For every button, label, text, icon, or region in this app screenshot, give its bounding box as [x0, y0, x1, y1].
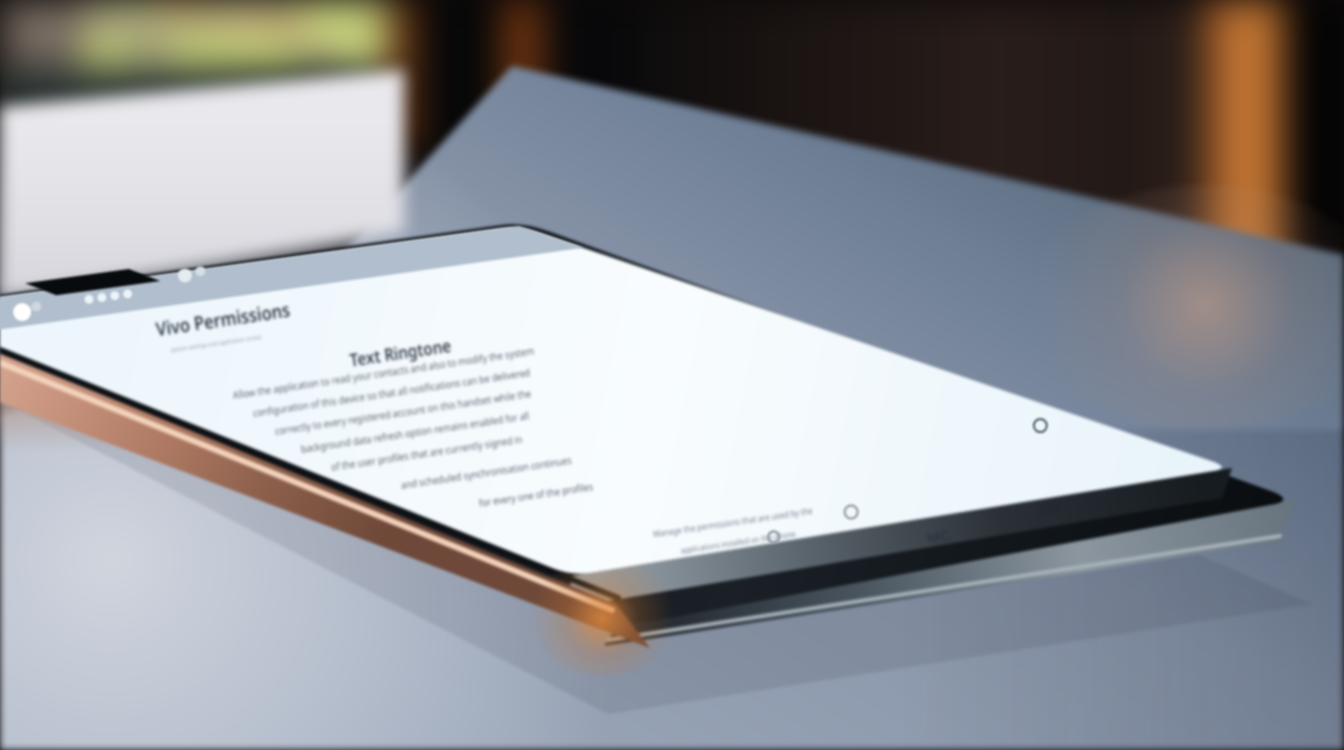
- button[interactable]: Smartphone displaying a document on a de…: [0, 0, 1344, 750]
